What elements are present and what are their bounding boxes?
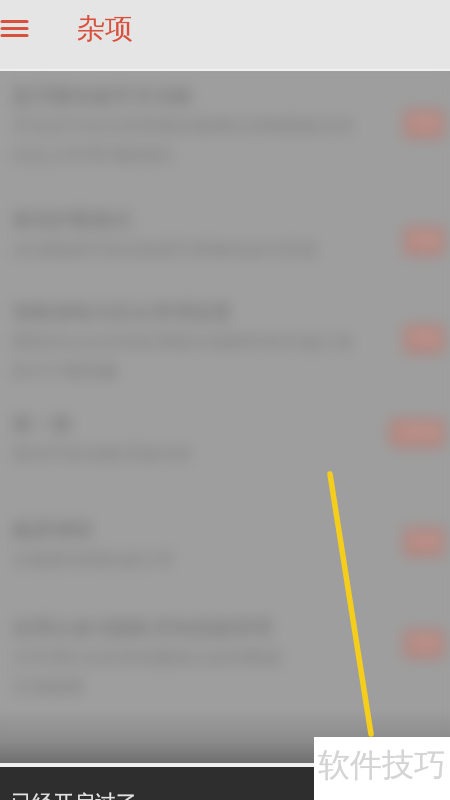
button[interactable]: 开启 (404, 630, 444, 658)
button[interactable]: 开启 (404, 110, 444, 138)
button[interactable]: 摇一摇 (0, 412, 450, 466)
button[interactable]: 应用分身与隐私空间高级管理 (0, 616, 450, 699)
button[interactable]: 开启 (404, 227, 444, 255)
button[interactable]: 夜间护眼模式 (0, 208, 450, 262)
button[interactable]: Menu (0, 0, 28, 69)
button[interactable]: 悬浮窗快捷开关功能 (0, 84, 450, 167)
button[interactable]: 开启 (404, 325, 444, 353)
button[interactable]: 开启 (404, 528, 444, 556)
staticText: 软件技巧 (318, 745, 446, 785)
staticText: 杂项 (77, 11, 133, 46)
button[interactable]: 截屏增强 (0, 518, 450, 572)
staticText: 已经开启过了 (11, 790, 137, 800)
button[interactable]: 智能省电与后台管理设置 (0, 300, 450, 383)
button[interactable]: 已开启 (390, 419, 444, 447)
